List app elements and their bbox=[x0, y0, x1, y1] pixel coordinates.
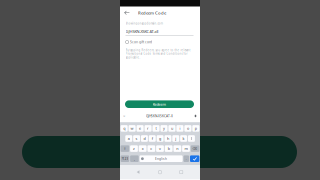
staticText: Scan gift card bbox=[130, 40, 152, 44]
staticText: o bbox=[187, 126, 189, 131]
button[interactable]: Return bbox=[190, 155, 199, 162]
staticText: a bbox=[128, 136, 130, 141]
staticText: GJHSKN-XSKCAT-X bbox=[146, 114, 173, 118]
staticText: showingonappdomain.com bbox=[125, 22, 162, 25]
staticText: GJHSKN-XSKCAT-xE bbox=[125, 29, 158, 34]
staticText: m bbox=[184, 146, 187, 151]
staticText: r bbox=[147, 126, 149, 131]
staticText: s bbox=[136, 136, 138, 141]
staticText: e bbox=[139, 126, 141, 131]
staticText: g bbox=[159, 136, 161, 141]
staticText: q bbox=[123, 126, 125, 131]
staticText: ⇧ bbox=[123, 147, 126, 150]
staticText: English bbox=[155, 156, 167, 161]
staticText: c bbox=[150, 146, 152, 151]
staticText: z bbox=[133, 146, 135, 151]
staticText: , bbox=[134, 156, 135, 161]
staticText: × bbox=[123, 113, 125, 119]
staticText: ⌫ bbox=[193, 147, 198, 150]
staticText: l bbox=[191, 136, 192, 141]
staticText: u bbox=[171, 126, 173, 131]
staticText: Redeem Code bbox=[138, 10, 166, 16]
staticText: n bbox=[176, 146, 178, 151]
staticText: . bbox=[186, 156, 187, 161]
staticText: j bbox=[175, 136, 176, 141]
staticText: x bbox=[142, 146, 144, 151]
staticText: k bbox=[183, 136, 185, 141]
staticText: d bbox=[143, 136, 145, 141]
staticText: Redeem bbox=[152, 102, 166, 107]
staticText: f bbox=[152, 136, 153, 141]
staticText: y bbox=[163, 126, 165, 131]
staticText: w bbox=[131, 126, 134, 131]
staticText: i bbox=[179, 126, 180, 131]
staticText: ?123 bbox=[121, 156, 128, 161]
staticText: By tapping Redeem, you agree to the rele… bbox=[125, 48, 190, 59]
button[interactable]: Back bbox=[123, 8, 133, 18]
staticText: p bbox=[195, 126, 197, 131]
staticText: h bbox=[167, 136, 169, 141]
button[interactable]: Redeem bbox=[125, 100, 194, 108]
staticText: v bbox=[159, 146, 161, 151]
staticText: b bbox=[168, 146, 170, 151]
